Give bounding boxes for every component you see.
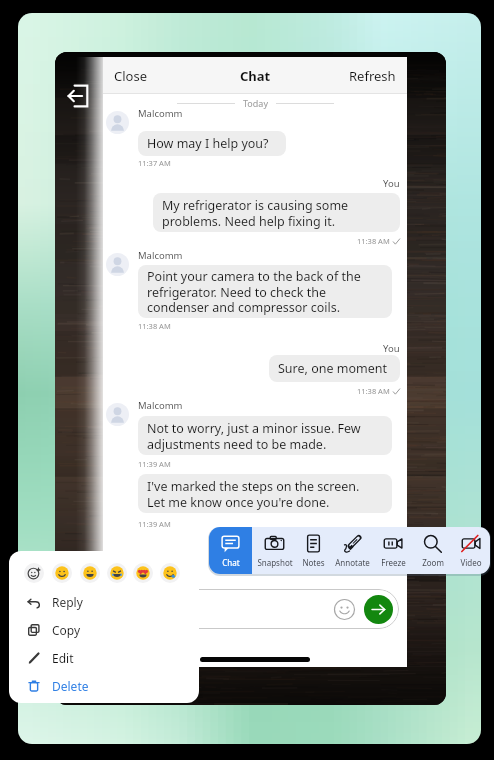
staticText: Malcomm [138,107,183,120]
button[interactable]: Freeze [374,527,413,574]
button[interactable]: Zoom [413,527,452,574]
staticText: Notes [302,557,325,568]
button[interactable]: Snapshot [252,527,297,574]
button[interactable]: My refrigerator is causing some problems… [153,193,400,232]
staticText: Zoom [422,557,444,568]
button[interactable]: Emoji [332,597,357,622]
button[interactable]: Reply [9,588,199,616]
staticText: Malcomm [138,249,183,262]
staticText: Malcomm [138,399,183,412]
staticText: How may I help you? [147,135,269,152]
button[interactable]: How may I help you? [138,131,286,156]
staticText: 11:37 AM [138,158,171,168]
button[interactable]: Reaction 5 [133,563,153,583]
staticText: Chat [222,557,240,568]
button[interactable]: Delete [9,672,199,700]
button[interactable]: Reaction 1 [24,563,44,583]
button[interactable]: I've marked the steps on the screen. Let… [138,474,392,513]
staticText: Reply [52,594,83,610]
staticText: Copy [52,622,81,638]
button[interactable]: Video [452,527,490,574]
button[interactable]: Chat [209,527,252,574]
button[interactable]: Close [108,57,153,94]
button[interactable]: Emoji [111,589,399,629]
staticText: My refrigerator is causing some problems… [162,197,349,229]
staticText: 11:38 AM [357,236,390,246]
button[interactable]: Reaction 6 [160,563,180,583]
staticText: Sure, one moment [278,360,387,377]
staticText: Video [460,557,482,568]
button[interactable]: Send [364,595,393,624]
staticText: You [383,342,400,355]
staticText: Chat [240,67,271,85]
staticText: Annotate [335,557,370,568]
button[interactable]: Edit [9,644,199,672]
button[interactable]: Copy [9,616,199,644]
button[interactable]: Annotate [330,527,374,574]
staticText: 11:39 AM [138,519,171,529]
button[interactable]: Refresh [343,57,402,94]
staticText: 11:38 AM [357,386,390,396]
staticText: Refresh [349,67,396,85]
staticText: Close [114,67,147,85]
staticText: Not to worry, just a minor issue. Few ad… [147,420,361,452]
button[interactable]: Point your camera to the back of the ref… [138,265,392,318]
staticText: Snapshot [257,557,293,568]
staticText: You [383,177,400,190]
staticText: Edit [52,650,74,666]
button[interactable]: Reaction 3 [80,563,100,583]
button[interactable]: Not to worry, just a minor issue. Few ad… [138,416,392,455]
staticText: Point your camera to the back of the ref… [147,268,361,315]
button[interactable]: Exit [66,83,92,109]
staticText: Delete [52,678,89,694]
button[interactable]: Notes [297,527,330,574]
staticText: I've marked the steps on the screen. Let… [147,478,360,510]
staticText: Today [243,97,268,109]
button[interactable]: Reaction 2 [52,563,72,583]
button[interactable]: Reaction 4 [107,563,127,583]
staticText: Freeze [381,557,406,568]
staticText: 11:38 AM [138,321,171,331]
staticText: 11:39 AM [138,459,171,469]
button[interactable]: Sure, one moment [269,355,400,382]
